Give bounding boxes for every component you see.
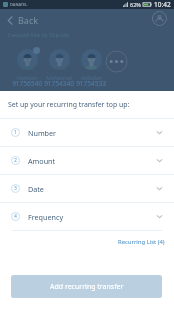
staticText: 10:42 [154, 0, 171, 9]
staticText: 3 [14, 185, 17, 192]
button[interactable]: 3 [0, 175, 174, 202]
staticText: 91754340 [44, 79, 74, 88]
button[interactable]: 4 [0, 203, 174, 230]
button[interactable]: More contacts [105, 50, 128, 73]
button[interactable]: Back [0, 11, 47, 29]
staticText: I would like to Top-Up [8, 31, 70, 39]
button[interactable]: Recurring List (4) [118, 238, 174, 246]
staticText: 1 [14, 129, 17, 136]
staticText: 2 [14, 157, 17, 164]
staticText: 62% [130, 1, 141, 8]
button[interactable]: Mohannad [42, 47, 76, 91]
staticText: Add recurring transfer [50, 282, 124, 292]
staticText: Number [28, 128, 57, 138]
button[interactable]: Abdullah [74, 47, 108, 91]
button[interactable]: Add recurring transfer [11, 275, 162, 298]
staticText: Date [28, 184, 44, 194]
staticText: Set up your recurring transfer top up: [8, 100, 130, 109]
button[interactable]: 2 [0, 147, 174, 174]
button[interactable]: Hamzah [10, 47, 44, 91]
staticText: DANATEL [10, 2, 28, 7]
staticText: 91756540 [12, 79, 42, 88]
staticText: Hamzah [17, 75, 37, 82]
staticText: Frequency [28, 212, 64, 222]
staticText: Mohannad [46, 75, 72, 82]
staticText: Abdullah [81, 75, 102, 82]
button[interactable]: 1 [0, 119, 174, 146]
button[interactable]: Profile [152, 11, 167, 26]
staticText: Back [18, 14, 39, 26]
staticText: 91754533 [76, 79, 106, 88]
staticText: 4 [14, 213, 17, 220]
staticText: Amount [28, 156, 56, 166]
